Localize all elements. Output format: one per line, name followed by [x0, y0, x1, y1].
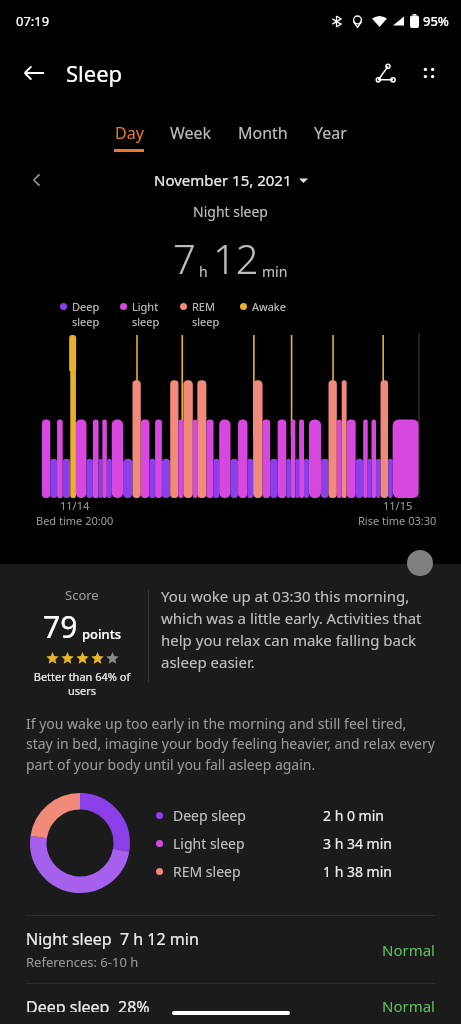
staticText: REM	[192, 299, 215, 314]
staticText: Sleep	[66, 58, 123, 88]
staticText: Year	[314, 122, 347, 144]
button[interactable]: More options	[407, 51, 451, 95]
button[interactable]: Back	[12, 51, 56, 95]
button[interactable]: Year	[301, 122, 360, 152]
staticText: Night sleep	[0, 202, 461, 221]
button[interactable]: Drag handle	[407, 550, 433, 576]
staticText: 95%	[423, 12, 449, 30]
staticText: 2 h 0 min	[323, 806, 384, 825]
staticText: points	[82, 625, 121, 643]
staticText: 07:19	[16, 12, 50, 30]
staticText: 7	[173, 231, 196, 285]
staticText: sleep	[192, 314, 220, 329]
button[interactable]: Share	[363, 51, 407, 95]
staticText: 11/15	[383, 498, 413, 513]
button[interactable]: Night sleep	[0, 916, 461, 983]
staticText: Bed time 20:00	[36, 513, 114, 528]
staticText: 12	[213, 231, 259, 285]
staticText: 11/14	[60, 498, 90, 513]
button[interactable]: Deep sleep	[0, 984, 461, 1024]
staticText: REM sleep	[173, 862, 323, 881]
button[interactable]: Week	[157, 122, 225, 152]
staticText: Rise time 03:30	[358, 513, 437, 528]
staticText: min	[262, 262, 288, 281]
staticText: Light sleep	[173, 834, 323, 853]
staticText: 7 h 12 min	[120, 928, 199, 950]
staticText: Night sleep	[26, 928, 112, 950]
staticText: 79	[43, 606, 78, 647]
button[interactable]: Day	[101, 122, 157, 152]
button[interactable]: November 15, 2021	[154, 170, 308, 190]
staticText: sleep	[132, 314, 160, 329]
staticText: sleep	[72, 314, 100, 329]
staticText: If you wake up too early in the morning …	[26, 714, 435, 775]
staticText: You woke up at 03:30 this morning, which…	[161, 586, 441, 673]
staticText: Deep sleep	[173, 806, 323, 825]
staticText: 3 h 34 min	[323, 834, 392, 853]
staticText: Awake	[252, 299, 286, 314]
staticText: Day	[115, 122, 144, 144]
staticText: Score	[65, 586, 99, 604]
staticText: Light	[132, 299, 159, 314]
staticText: Deep sleep	[26, 996, 110, 1012]
staticText: Month	[238, 122, 288, 144]
staticText: Normal	[382, 940, 435, 960]
staticText: References: 6-10 h	[26, 953, 139, 971]
staticText: 1 h 38 min	[323, 862, 392, 881]
staticText: 28%	[118, 996, 150, 1012]
button[interactable]: Month	[225, 122, 301, 152]
staticText: Deep	[72, 299, 100, 314]
staticText: Normal	[382, 996, 435, 1012]
staticText: Better than 64% of users	[16, 669, 148, 698]
staticText: h	[199, 262, 208, 281]
staticText: November 15, 2021	[154, 170, 292, 190]
staticText: Week	[170, 122, 212, 144]
button[interactable]: Previous day	[22, 166, 52, 194]
